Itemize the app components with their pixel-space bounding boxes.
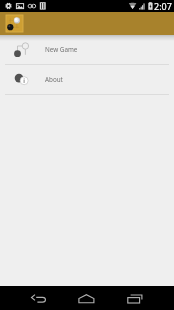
staticText: New Game [45,45,78,54]
button[interactable]: Open navigation [6,15,23,32]
staticText: 2:07 [154,0,172,12]
button[interactable]: About [0,65,174,94]
button[interactable]: Recents [110,286,157,310]
staticText: About [45,75,63,84]
button[interactable]: New Game [0,35,174,64]
button[interactable]: Home [62,286,109,310]
button[interactable]: Back [14,286,61,310]
